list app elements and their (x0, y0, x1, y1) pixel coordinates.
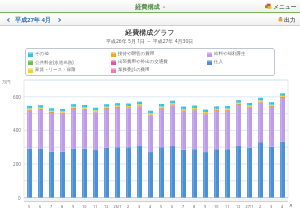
button[interactable]: 接待や贈答の費用 (111, 50, 155, 58)
button[interactable]: その他 (28, 50, 49, 58)
other: Export (278, 17, 283, 22)
staticText: 接待や贈答の費用 (118, 51, 155, 57)
button[interactable]: Menu (265, 3, 297, 10)
staticText: 経費構成 (135, 3, 160, 11)
other: Menu (265, 3, 272, 10)
staticText: 家賃・リース・保険 (35, 67, 76, 73)
staticText: 平成26年 5月 1日 ～ 平成27年 4月30日 (106, 38, 194, 45)
staticText: 仕入 (214, 59, 223, 65)
button[interactable]: 経費構成 (135, 3, 166, 11)
staticText: 公共料金(水道光熱) (35, 59, 74, 65)
staticText: 出張費用や外出の交通費 (118, 59, 168, 65)
staticText: メニュー (273, 3, 297, 10)
staticText: 平成27年 4月 (15, 16, 51, 24)
staticText: その他 (35, 51, 49, 57)
button[interactable]: 給料や福利厚生 (207, 50, 246, 58)
button[interactable]: 家賃・リース・保険 (28, 66, 76, 74)
button[interactable]: Export (278, 16, 296, 23)
button[interactable]: 業務委託の費用 (111, 66, 150, 74)
button[interactable]: Next month (56, 16, 64, 24)
button[interactable]: 出張費用や外出の交通費 (111, 58, 168, 66)
button[interactable]: 公共料金(水道光熱) (28, 58, 74, 66)
button[interactable]: 仕入 (207, 58, 223, 66)
staticText: 出力 (284, 16, 296, 23)
staticText: 経費構成グラフ (125, 28, 175, 37)
staticText: 給料や福利厚生 (214, 51, 246, 57)
staticText: 業務委託の費用 (118, 67, 150, 73)
button[interactable]: Previous month (4, 16, 12, 24)
